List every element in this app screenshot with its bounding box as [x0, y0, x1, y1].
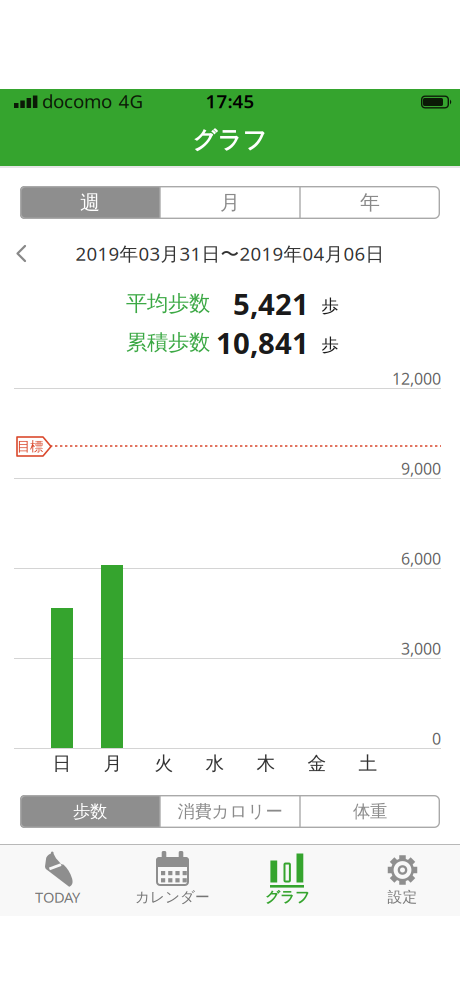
staticText: 目標	[17, 438, 43, 455]
staticText: 17:45	[205, 89, 254, 113]
staticText: 木	[256, 752, 275, 775]
staticText: 週	[80, 190, 100, 215]
staticText: docomo	[42, 89, 112, 113]
staticText: 4G	[118, 89, 143, 113]
staticText: 設定	[387, 888, 417, 906]
staticText: 月	[103, 752, 122, 775]
staticText: 12,000	[392, 368, 441, 389]
staticText: 2019年03月31日〜2019年04月06日	[75, 241, 384, 266]
staticText: グラフ	[265, 888, 310, 906]
staticText: 平均歩数	[126, 290, 210, 317]
staticText: 消費カロリー	[177, 801, 282, 822]
staticText: 5,421	[233, 284, 309, 323]
staticText: 歩	[321, 334, 338, 356]
staticText: TODAY	[35, 887, 80, 907]
staticText: 年	[360, 190, 380, 215]
staticText: 月	[220, 190, 240, 215]
staticText: 累積歩数	[126, 329, 210, 356]
staticText: 火	[154, 752, 173, 775]
staticText: 日	[52, 752, 71, 775]
staticText: 土	[358, 752, 377, 775]
staticText: 体重	[353, 801, 387, 822]
staticText: カレンダー	[135, 888, 210, 906]
staticText: 10,841	[216, 323, 309, 362]
staticText: 9,000	[401, 458, 441, 479]
staticText: 3,000	[401, 638, 441, 659]
staticText: 0	[432, 728, 441, 749]
staticText: 水	[205, 752, 224, 775]
staticText: 6,000	[401, 548, 441, 569]
staticText: 歩	[321, 295, 338, 317]
staticText: 歩数	[73, 801, 107, 822]
staticText: グラフ	[192, 125, 267, 155]
staticText: 金	[307, 752, 326, 775]
